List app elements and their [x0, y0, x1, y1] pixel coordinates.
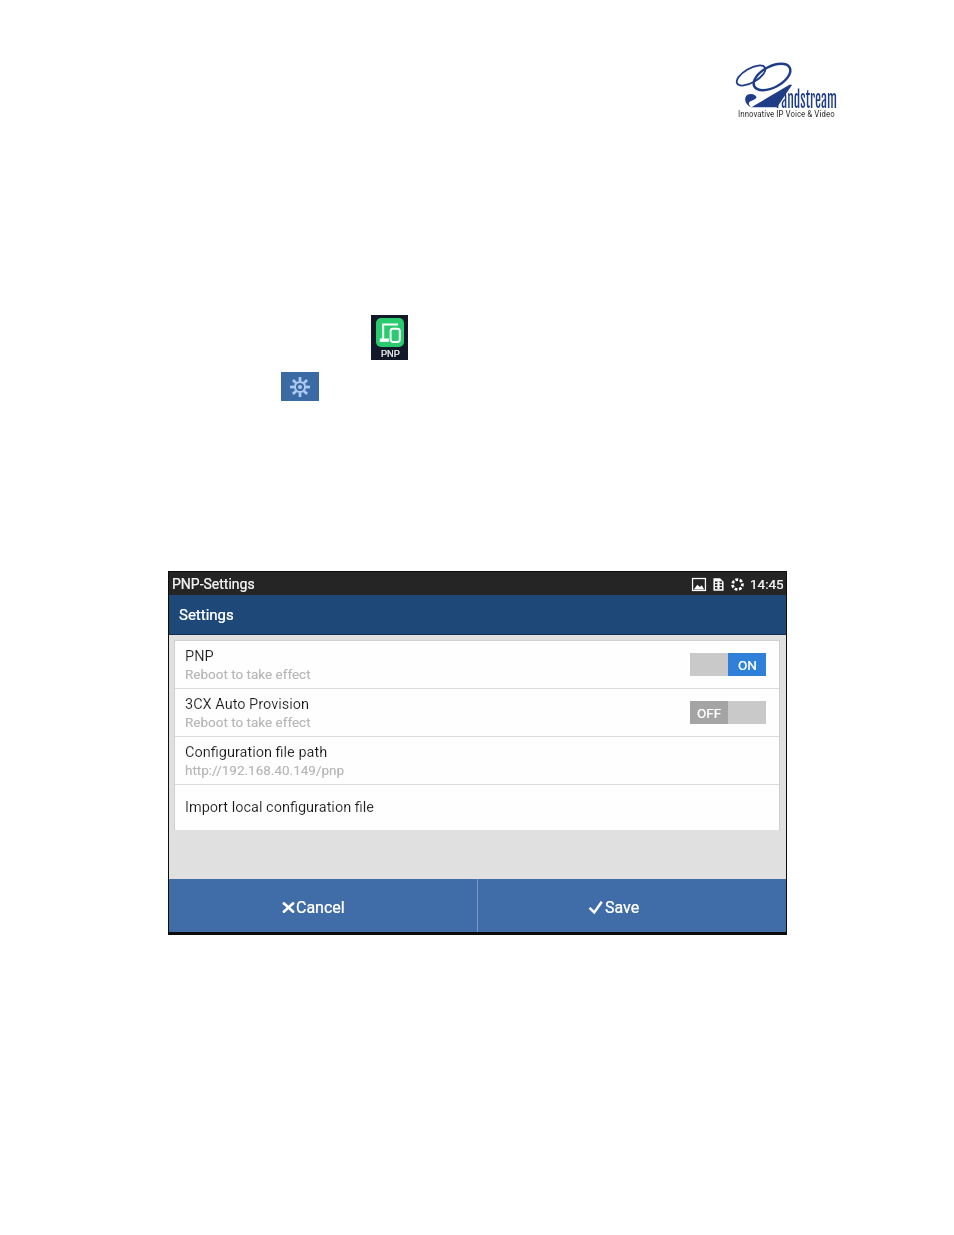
staticText: Configuration file path: [185, 744, 328, 761]
staticText: OFF: [697, 705, 722, 721]
button[interactable]: Import local configuration file: [175, 785, 779, 830]
button[interactable]: 3CX Auto Provision: [175, 689, 779, 736]
staticText: Cancel: [296, 898, 345, 917]
button[interactable]: Configuration file path: [175, 737, 779, 784]
button[interactable]: PNP switch on: [690, 653, 766, 676]
button[interactable]: Switch off: [690, 701, 766, 724]
staticText: PNP-Settings: [172, 576, 255, 592]
staticText: Save: [605, 898, 640, 917]
staticText: 3CX Auto Provision: [185, 696, 310, 713]
staticText: 14:45: [750, 576, 784, 592]
staticText: PNP: [185, 648, 214, 665]
staticText: PNP: [381, 348, 400, 359]
staticText: Settings: [179, 606, 234, 624]
staticText: http://192.168.40.149/pnp: [185, 762, 345, 778]
button[interactable]: PNP: [175, 641, 779, 688]
button[interactable]: Cancel: [169, 879, 477, 932]
staticText: Reboot to take effect: [185, 714, 311, 730]
staticText: randstream: [776, 85, 837, 113]
button[interactable]: PNP app icon: [371, 315, 408, 360]
button[interactable]: Save: [478, 879, 786, 932]
staticText: Import local configuration file: [185, 799, 375, 816]
staticText: Reboot to take effect: [185, 666, 311, 682]
button[interactable]: Settings: [281, 372, 319, 401]
staticText: Innovative IP Voice & Video: [738, 109, 835, 119]
staticText: ON: [738, 657, 757, 673]
